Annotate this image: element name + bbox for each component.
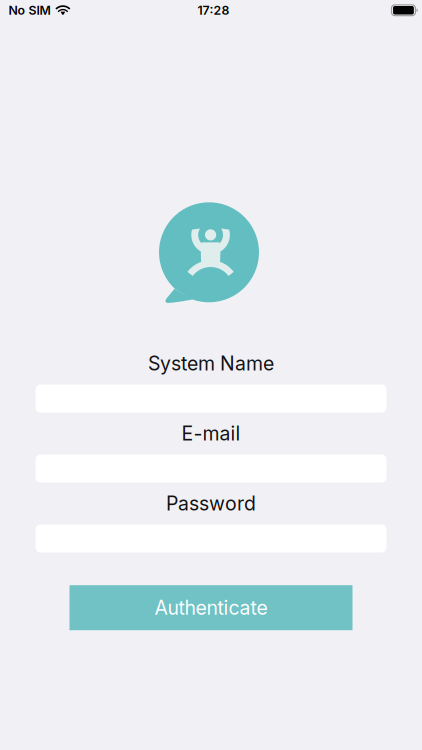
button[interactable]: Authenticate bbox=[69, 585, 352, 630]
staticText: 17:28 bbox=[197, 3, 229, 18]
staticText: E-mail bbox=[181, 421, 240, 445]
staticText: No SIM bbox=[8, 3, 50, 18]
staticText: System Name bbox=[148, 351, 274, 375]
staticText: Password bbox=[166, 491, 256, 515]
staticText: Authenticate bbox=[154, 596, 267, 619]
